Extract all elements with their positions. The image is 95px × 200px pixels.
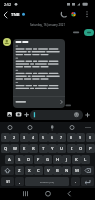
button[interactable] [0, 9, 12, 21]
button[interactable]: Q [1, 144, 10, 153]
button[interactable] [30, 110, 83, 120]
button[interactable]: R [29, 144, 38, 153]
staticText: J [66, 157, 68, 163]
staticText: TNB [11, 12, 20, 18]
staticText: C [37, 168, 40, 174]
button[interactable]: H [53, 155, 62, 164]
staticText: 3 [23, 135, 26, 140]
button[interactable]: B [53, 166, 62, 175]
button[interactable]: 0 [86, 133, 95, 142]
button[interactable]: 2 [10, 133, 19, 142]
staticText: , [19, 179, 21, 185]
button[interactable]: X [25, 166, 34, 175]
staticText: 2:52 [4, 2, 12, 7]
button[interactable]: D [24, 155, 33, 164]
button[interactable]: I [67, 144, 76, 153]
staticText: E [23, 146, 26, 152]
staticText: H [56, 157, 60, 163]
staticText: 8 [70, 135, 73, 140]
staticText: X [28, 168, 31, 174]
button[interactable]: T [39, 144, 48, 153]
staticText: R [32, 146, 35, 152]
button[interactable]: E [20, 144, 29, 153]
staticText: K [75, 157, 78, 163]
button[interactable]: P [86, 144, 95, 153]
button[interactable]: , [15, 177, 24, 186]
button[interactable]: 9 [76, 133, 85, 142]
staticText: 2 [13, 135, 16, 140]
button[interactable]: A [5, 155, 14, 164]
button[interactable]: 5 [39, 133, 48, 142]
staticText: T [42, 146, 45, 152]
staticText: Q [4, 146, 8, 152]
button[interactable]: M [72, 166, 81, 175]
staticText: N [65, 168, 69, 174]
staticText: F [37, 157, 40, 163]
staticText: I [71, 146, 73, 152]
button[interactable]: 1 [1, 133, 10, 142]
staticText: 4 [32, 135, 35, 140]
staticText: W [13, 146, 17, 152]
button[interactable]: U [57, 144, 66, 153]
button[interactable]: English (UK) [25, 177, 69, 186]
button[interactable]: F [34, 155, 43, 164]
button[interactable] [83, 110, 92, 120]
staticText: . [75, 179, 77, 185]
staticText: O [79, 146, 83, 152]
staticText: A [8, 157, 11, 163]
button[interactable]: !#1 [1, 177, 14, 186]
staticText: G [46, 157, 50, 163]
button[interactable]: G [43, 155, 52, 164]
staticText: B [56, 168, 59, 174]
button[interactable] [84, 29, 94, 36]
button[interactable]: 4 [29, 133, 38, 142]
staticText: U [60, 146, 64, 152]
staticText: P [89, 146, 92, 152]
button[interactable]: W [10, 144, 19, 153]
button[interactable]: O [76, 144, 85, 153]
staticText: S [18, 157, 21, 163]
staticText: 5 [42, 135, 45, 140]
button[interactable]: L [81, 155, 90, 164]
staticText: 7 [60, 135, 63, 140]
button[interactable] [81, 177, 94, 186]
button[interactable]: V [44, 166, 53, 175]
staticText: English (UK) [40, 180, 55, 183]
staticText: Saturday, 16 January 2021 [30, 23, 66, 27]
staticText: L [84, 157, 87, 163]
button[interactable]: J [62, 155, 71, 164]
staticText: D [27, 157, 31, 163]
staticText: 1 [4, 135, 7, 140]
button[interactable]: 8 [67, 133, 76, 142]
button[interactable]: 6 [48, 133, 57, 142]
button[interactable] [1, 166, 14, 175]
button[interactable]: N [62, 166, 71, 175]
staticText: 9 [79, 135, 82, 140]
button[interactable] [13, 39, 65, 108]
staticText: V [47, 168, 50, 174]
staticText: Z [18, 168, 21, 174]
staticText: 6 [51, 135, 54, 140]
button[interactable]: C [34, 166, 43, 175]
button[interactable]: 3 [20, 133, 29, 142]
button[interactable]: . [71, 177, 80, 186]
button[interactable] [81, 166, 94, 175]
button[interactable]: Z [15, 166, 24, 175]
staticText: 0 [89, 135, 92, 140]
staticText: M [75, 168, 79, 174]
button[interactable]: Y [48, 144, 57, 153]
button[interactable]: TNB [11, 9, 27, 21]
staticText: !#1 [6, 180, 10, 184]
staticText: Y [51, 146, 54, 152]
button[interactable]: 7 [57, 133, 66, 142]
button[interactable]: K [72, 155, 81, 164]
button[interactable]: S [15, 155, 24, 164]
